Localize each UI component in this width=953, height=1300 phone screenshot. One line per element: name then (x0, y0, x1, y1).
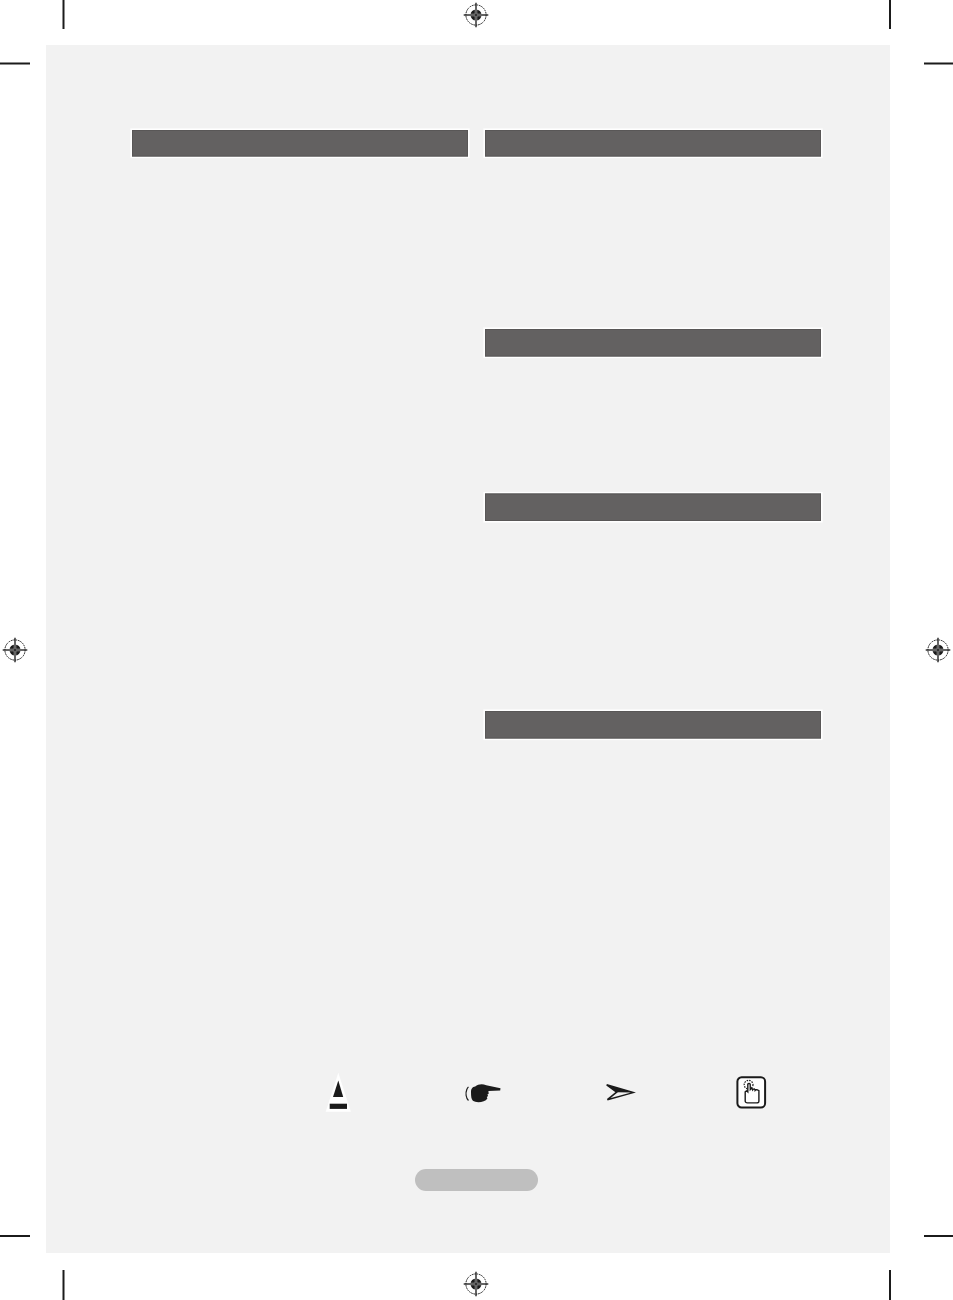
button[interactable]: Section heading 3 (485, 329, 821, 357)
button[interactable]: Section heading 4 (485, 494, 821, 522)
button[interactable]: Send (604, 1082, 636, 1102)
button[interactable]: Tap (737, 1077, 766, 1108)
button[interactable]: Section heading 2 (485, 130, 821, 157)
button[interactable]: Warning (324, 1070, 353, 1114)
button[interactable]: Continue (415, 1169, 538, 1191)
button[interactable]: Section heading 1 (132, 130, 468, 157)
button[interactable]: Pointing hand (466, 1082, 502, 1104)
button[interactable]: Section heading 5 (485, 711, 821, 739)
